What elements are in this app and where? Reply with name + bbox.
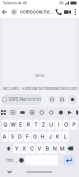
staticText: J: [49, 133, 52, 140]
staticText: G: [33, 133, 37, 140]
button[interactable]: Hide keyboard: [2, 167, 17, 177]
button[interactable]: Shift: [5, 143, 12, 154]
button[interactable]: U: [47, 120, 54, 130]
staticText: F: [26, 133, 29, 140]
staticText: K: [56, 133, 60, 140]
button[interactable]: Delete: [66, 143, 74, 154]
button[interactable]: D: [16, 131, 23, 142]
button[interactable]: Q: [2, 120, 9, 130]
staticText: M: [60, 145, 65, 152]
button[interactable]: Comma: [14, 155, 18, 165]
staticText: U: [49, 121, 53, 128]
staticText: I: [58, 121, 59, 128]
button[interactable]: T: [32, 120, 39, 130]
staticText: ,: [16, 157, 17, 163]
button[interactable]: Voice input: [74, 107, 79, 118]
button[interactable]: G: [32, 131, 38, 142]
button[interactable]: Emoji: [19, 155, 24, 165]
staticText: R: [27, 121, 30, 128]
button[interactable]: Gallery: [47, 94, 57, 105]
button[interactable]: M: [59, 143, 66, 154]
button[interactable]: Settings: [8, 107, 18, 118]
button[interactable]: Contact photo: [9, 6, 18, 18]
staticText: B: [46, 145, 49, 152]
button[interactable]: Y: [13, 143, 20, 154]
staticText: Z: [42, 121, 45, 128]
staticText: Q: [3, 121, 7, 128]
button[interactable]: X: [21, 143, 28, 154]
button[interactable]: Camera: [57, 94, 67, 105]
staticText: S: [11, 133, 14, 140]
button[interactable]: Search: [56, 107, 66, 118]
staticText: V: [37, 145, 41, 152]
button[interactable]: V: [36, 143, 43, 154]
button[interactable]: Stickers: [27, 107, 37, 118]
button[interactable]: Microphone: [67, 94, 78, 105]
button[interactable]: B: [44, 143, 50, 154]
button[interactable]: Theme: [37, 107, 46, 118]
button[interactable]: J: [47, 131, 53, 142]
button[interactable]: R: [25, 120, 31, 130]
button[interactable]: More options: [72, 6, 78, 18]
staticText: P: [72, 121, 75, 128]
button[interactable]: Symbols: [5, 155, 13, 165]
button[interactable]: Translate: [46, 107, 56, 118]
button[interactable]: N: [51, 143, 58, 154]
staticText: .: [60, 157, 61, 163]
staticText: SMS Nachricht: [8, 97, 40, 102]
staticText: A: [2, 133, 6, 140]
staticText: notebookche…: [20, 9, 54, 15]
staticText: Telekom.de 4G: [2, 1, 27, 5]
button[interactable]: L: [62, 131, 69, 142]
staticText: L: [64, 133, 67, 140]
button[interactable]: I: [55, 120, 62, 130]
staticText: O: [64, 121, 68, 128]
button[interactable]: F: [24, 131, 31, 142]
button[interactable]: W: [9, 120, 16, 130]
staticText: 09:46: [35, 73, 44, 78]
button[interactable]: Call: [54, 6, 63, 18]
button[interactable]: Z: [40, 120, 47, 130]
staticText: SECURED: Authcode für notebookcheck.com: [2, 86, 76, 91]
button[interactable]: A: [1, 131, 8, 142]
staticText: H: [41, 133, 45, 140]
staticText: X: [22, 145, 26, 152]
button[interactable]: Send: [66, 107, 74, 118]
staticText: N: [53, 145, 57, 152]
button[interactable]: E: [17, 120, 24, 130]
button[interactable]: notebookche…: [18, 6, 54, 18]
button[interactable]: O: [63, 120, 69, 130]
button[interactable]: S: [9, 131, 15, 142]
button[interactable]: Clipboard: [0, 107, 8, 118]
button[interactable]: P: [70, 120, 77, 130]
button[interactable]: C: [28, 143, 35, 154]
staticText: D: [18, 133, 22, 140]
button[interactable]: Back: [0, 6, 9, 18]
staticText: E: [19, 121, 22, 128]
button[interactable]: K: [54, 131, 61, 142]
staticText: ?123: [6, 158, 13, 163]
button[interactable]: H: [39, 131, 46, 142]
staticText: W: [10, 121, 15, 128]
button[interactable]: Period: [59, 155, 63, 165]
staticText: T: [34, 121, 37, 128]
button[interactable]: Video call: [63, 6, 72, 18]
staticText: Y: [15, 145, 19, 152]
button[interactable]: GIF: [18, 107, 27, 118]
staticText: 4G: [59, 1, 64, 5]
button[interactable]: Enter: [63, 155, 74, 165]
staticText: C: [30, 145, 34, 152]
